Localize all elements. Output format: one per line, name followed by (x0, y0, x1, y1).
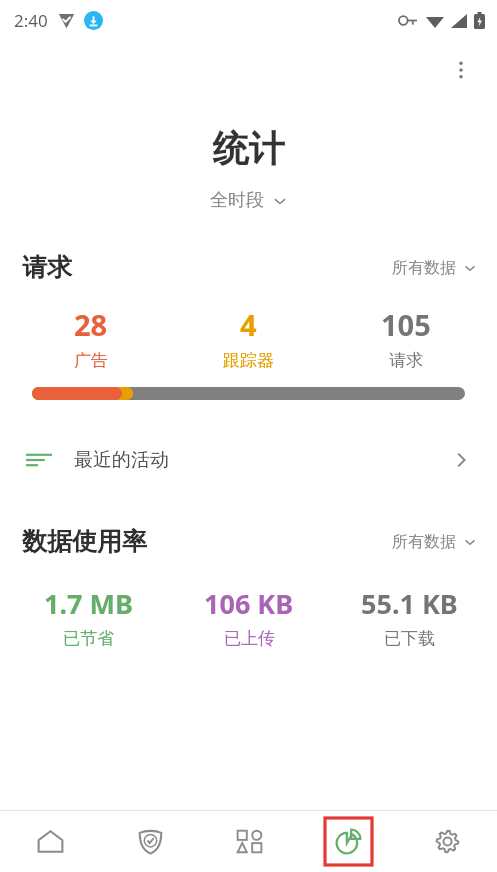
staticText: 106 KB (204, 585, 294, 622)
button[interactable]: Apps (200, 811, 299, 872)
staticText: 所有数据 (392, 532, 456, 552)
staticText: 1.7 MB (44, 585, 133, 622)
staticText: 数据使用率 (22, 526, 147, 557)
button[interactable]: 所有数据 (392, 258, 477, 278)
staticText: 所有数据 (392, 258, 456, 278)
staticText: 全时段 (210, 189, 264, 212)
button[interactable]: Protection (100, 811, 200, 872)
staticText: 请求 (22, 252, 72, 283)
button[interactable]: 所有数据 (392, 532, 477, 552)
staticText: 已下载 (384, 628, 435, 649)
button[interactable]: 全时段 (0, 189, 497, 212)
button[interactable]: Settings (398, 811, 497, 872)
button[interactable]: Home (0, 811, 100, 872)
staticText: 28 (74, 305, 108, 344)
staticText: 105 (381, 305, 431, 344)
staticText: 请求 (389, 350, 423, 371)
staticText: 跟踪器 (223, 350, 274, 371)
staticText: 统计 (0, 126, 497, 171)
staticText: 最近的活动 (74, 448, 169, 472)
staticText: 已节省 (63, 628, 114, 649)
button[interactable]: Statistics (325, 818, 372, 865)
staticText: 55.1 KB (361, 585, 458, 622)
staticText: 4 (240, 305, 257, 344)
staticText: 已上传 (224, 628, 275, 649)
button[interactable]: 最近的活动 (0, 432, 497, 488)
staticText: 广告 (74, 350, 108, 371)
staticText: 2:40 (14, 9, 48, 32)
button[interactable]: More options (437, 46, 485, 94)
